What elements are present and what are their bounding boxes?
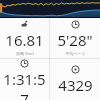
staticText: 平均ペース [65,51,86,56]
button[interactable]: Calories [50,59,100,100]
button[interactable]: Duration [0,59,49,100]
staticText: 5'28" [57,30,93,50]
staticText: 16.81 [5,30,44,50]
staticText: 1:31:57 [0,69,49,100]
staticText: 距離 (km) [16,51,34,56]
staticText: 4329 [58,75,93,95]
button[interactable]: Distance [0,18,49,58]
button[interactable]: Average pace [50,18,100,58]
